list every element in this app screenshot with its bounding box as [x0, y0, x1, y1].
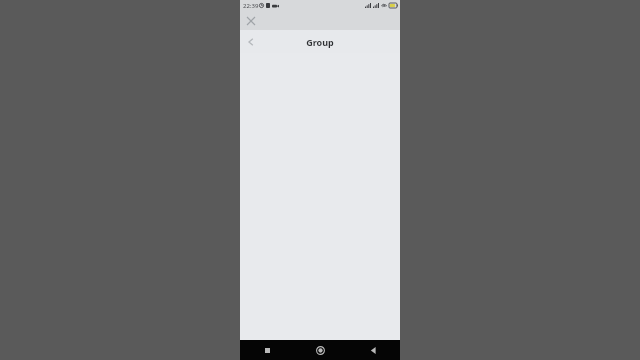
button[interactable]: Back: [242, 33, 260, 51]
button[interactable]: Back: [347, 340, 400, 360]
staticText: Group: [306, 36, 334, 48]
button[interactable]: Home: [294, 340, 347, 360]
staticText: 22:39: [243, 2, 259, 10]
button[interactable]: Recents: [240, 340, 294, 360]
button[interactable]: Close: [243, 13, 259, 29]
